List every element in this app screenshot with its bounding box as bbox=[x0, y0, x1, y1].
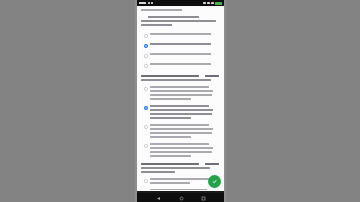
button[interactable] bbox=[144, 62, 219, 69]
button[interactable]: Back bbox=[156, 196, 160, 200]
button[interactable] bbox=[144, 123, 219, 139]
button[interactable] bbox=[144, 32, 219, 39]
button[interactable] bbox=[144, 188, 219, 191]
button[interactable] bbox=[144, 52, 219, 59]
button[interactable]: Home bbox=[179, 196, 183, 200]
button[interactable] bbox=[144, 42, 219, 49]
button[interactable] bbox=[144, 177, 219, 185]
button[interactable]: Recents bbox=[201, 196, 205, 200]
button[interactable] bbox=[144, 142, 219, 158]
button[interactable]: Submit bbox=[208, 175, 221, 188]
button[interactable] bbox=[144, 104, 219, 120]
button[interactable] bbox=[144, 85, 219, 101]
